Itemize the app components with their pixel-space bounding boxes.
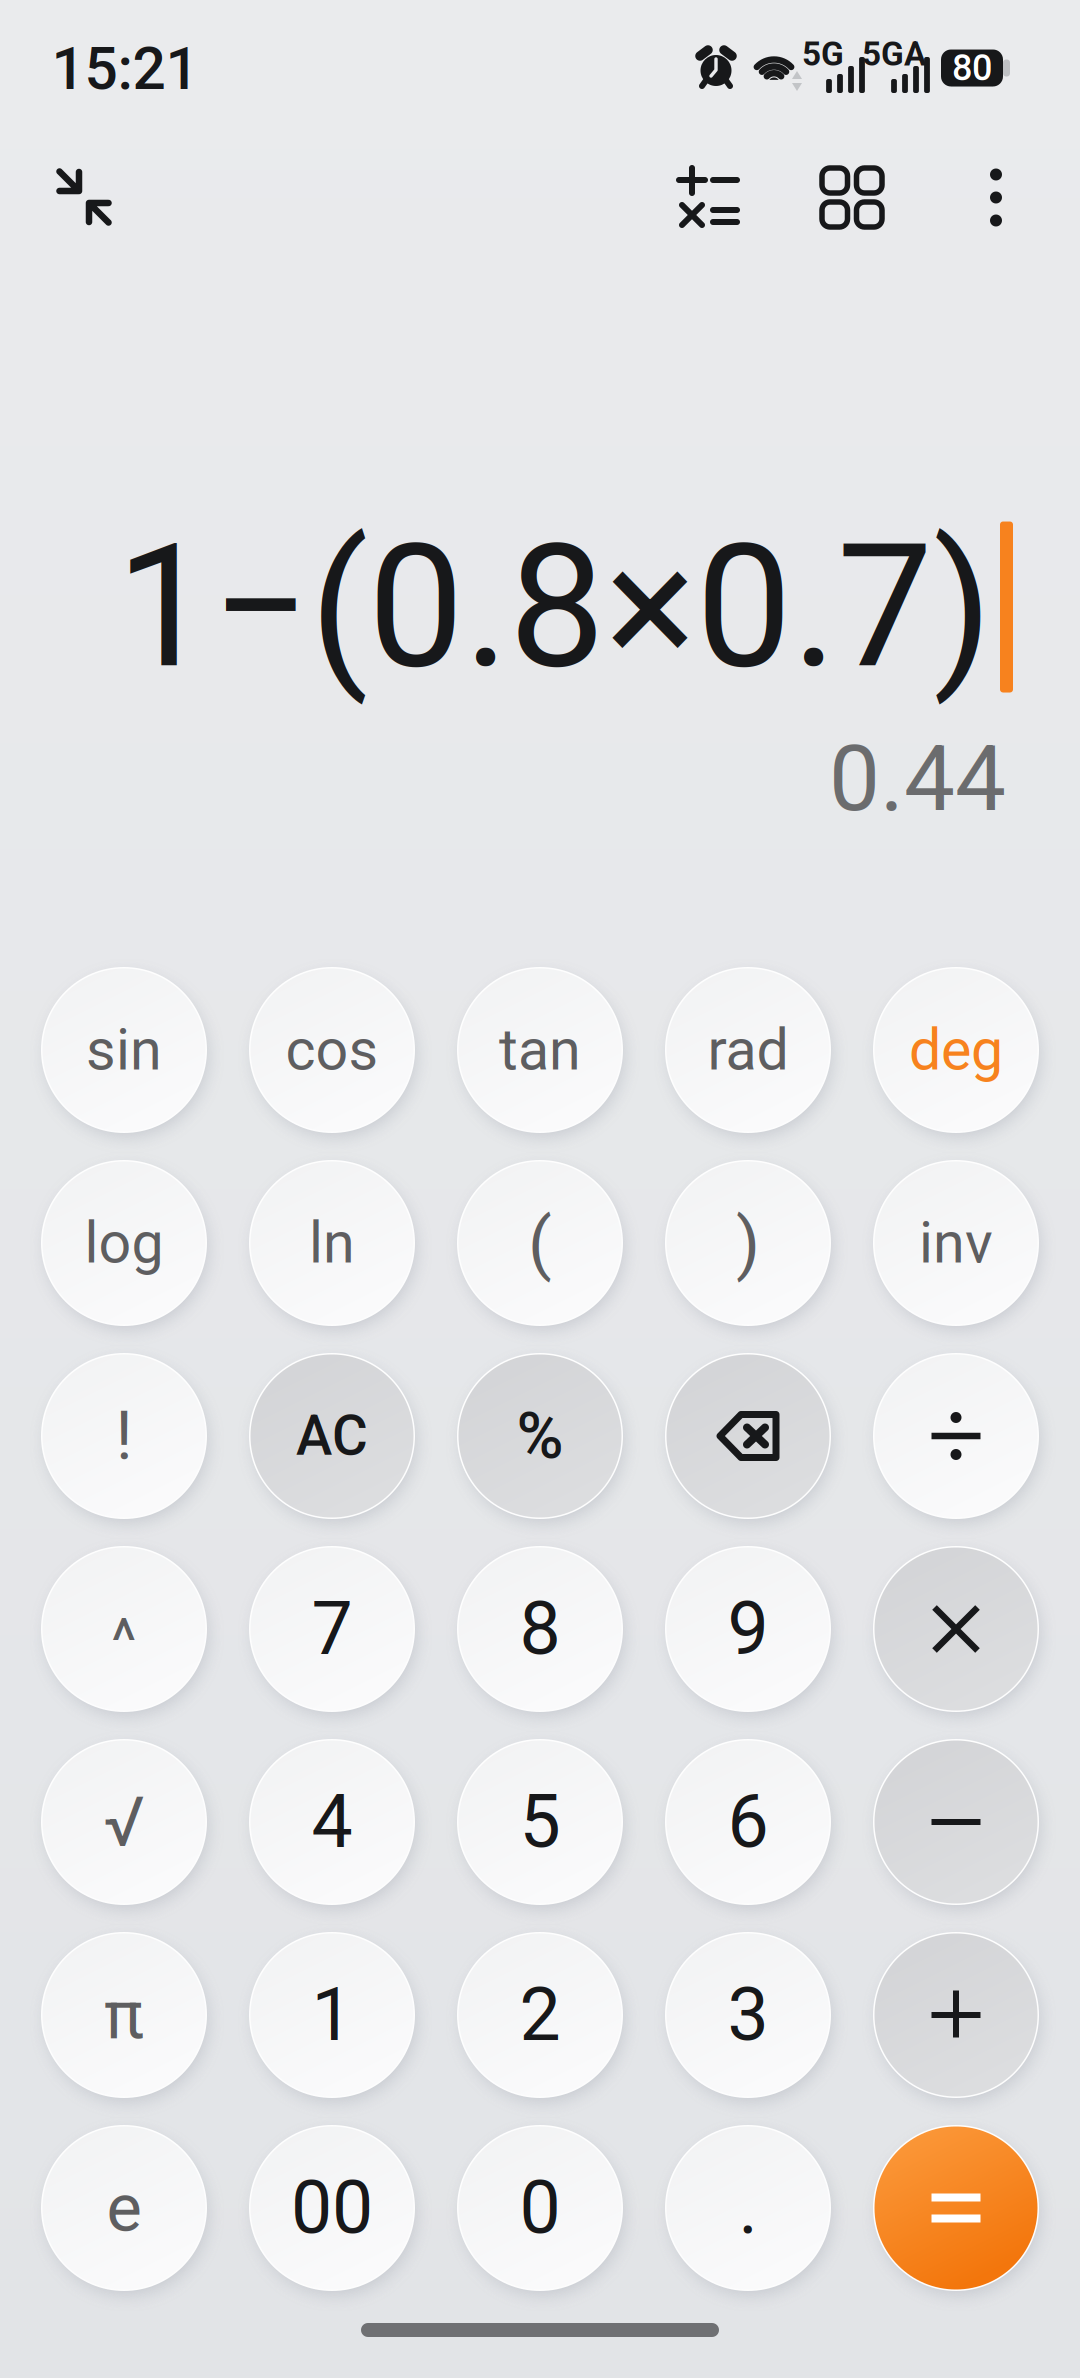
staticText: deg	[909, 1016, 1003, 1084]
staticText: tan	[499, 1016, 581, 1084]
button[interactable]: e	[41, 2125, 207, 2291]
button[interactable]: log	[41, 1160, 207, 1326]
button[interactable]: 2	[457, 1932, 623, 2098]
button[interactable]: sin	[41, 967, 207, 1133]
staticText: 80	[952, 47, 992, 89]
staticText: 5	[519, 1779, 560, 1865]
button[interactable]: Unit converter	[787, 137, 917, 257]
button[interactable]: ln	[249, 1160, 415, 1326]
staticText: 6	[727, 1779, 768, 1865]
staticText: log	[84, 1209, 163, 1277]
staticText: 0	[519, 2165, 560, 2251]
staticText: .	[738, 2165, 757, 2251]
button[interactable]: !	[41, 1353, 207, 1519]
staticText: 4	[311, 1779, 352, 1865]
staticText: 2	[519, 1972, 560, 2058]
staticText: inv	[919, 1209, 993, 1277]
button[interactable]: tan	[457, 967, 623, 1133]
staticText: AC	[296, 1404, 368, 1468]
staticText: 1	[311, 1972, 352, 2058]
button[interactable]: 7	[249, 1546, 415, 1712]
button[interactable]: Calculation modes	[643, 136, 773, 256]
staticText: 0.44	[829, 726, 1006, 832]
button[interactable]: 5	[457, 1739, 623, 1905]
staticText: )	[736, 1202, 760, 1284]
staticText: (	[528, 1202, 552, 1284]
button[interactable]: 6	[665, 1739, 831, 1905]
staticText: 5G	[802, 34, 844, 74]
staticText: rad	[707, 1016, 788, 1084]
staticText: ^	[111, 1605, 137, 1677]
button[interactable]: √	[41, 1739, 207, 1905]
button[interactable]: 9	[665, 1546, 831, 1712]
button[interactable]: .	[665, 2125, 831, 2291]
button[interactable]: Equals	[873, 2125, 1039, 2291]
button[interactable]: Backspace	[665, 1353, 831, 1519]
staticText: 8	[519, 1586, 560, 1672]
button[interactable]: (	[457, 1160, 623, 1326]
button[interactable]: Collapse	[14, 137, 154, 257]
button[interactable]: 3	[665, 1932, 831, 2098]
button[interactable]: )	[665, 1160, 831, 1326]
staticText: 7	[311, 1586, 352, 1672]
staticText: 15:21	[51, 35, 198, 103]
staticText: %	[516, 1398, 563, 1473]
button[interactable]: Minus	[873, 1739, 1039, 1905]
staticText: 1−(0.8×0.7)	[116, 507, 992, 707]
staticText: !	[115, 1397, 132, 1475]
button[interactable]: AC	[249, 1353, 415, 1519]
staticText: sin	[86, 1016, 162, 1084]
button[interactable]: deg	[873, 967, 1039, 1133]
staticText: 5GA	[862, 34, 926, 74]
button[interactable]: More options	[944, 137, 1048, 257]
button[interactable]: rad	[665, 967, 831, 1133]
button[interactable]: Divide	[873, 1353, 1039, 1519]
staticText: √	[103, 1781, 144, 1863]
staticText: 9	[727, 1586, 768, 1672]
button[interactable]: ^	[41, 1546, 207, 1712]
button[interactable]: Multiply	[873, 1546, 1039, 1712]
button[interactable]: cos	[249, 967, 415, 1133]
button[interactable]: Plus	[873, 1932, 1039, 2098]
button[interactable]: 1	[249, 1932, 415, 2098]
staticText: 3	[727, 1972, 768, 2058]
button[interactable]: %	[457, 1353, 623, 1519]
button[interactable]: 0	[457, 2125, 623, 2291]
button[interactable]: 00	[249, 2125, 415, 2291]
staticText: cos	[285, 1016, 378, 1084]
button[interactable]: inv	[873, 1160, 1039, 1326]
button[interactable]: π	[41, 1932, 207, 2098]
button[interactable]: 4	[249, 1739, 415, 1905]
staticText: ln	[309, 1209, 355, 1277]
staticText: 00	[291, 2165, 373, 2251]
staticText: e	[106, 2169, 141, 2247]
button[interactable]: 8	[457, 1546, 623, 1712]
staticText: π	[104, 1976, 144, 2054]
